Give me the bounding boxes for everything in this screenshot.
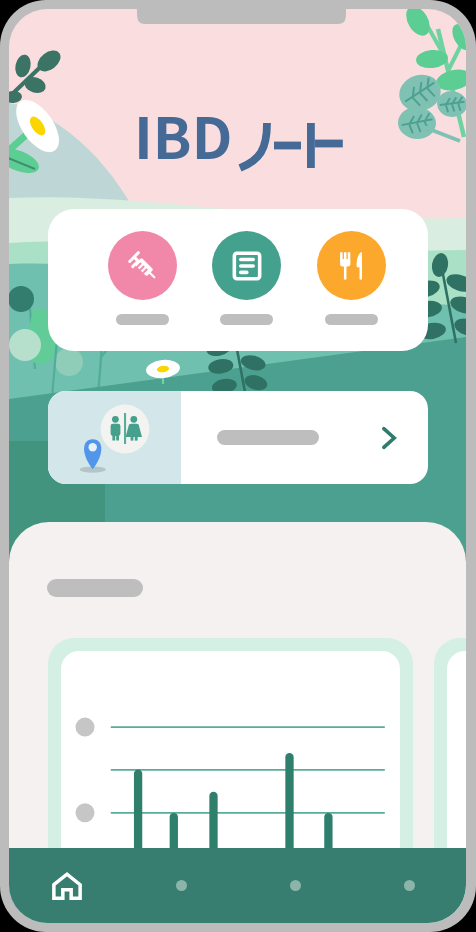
button[interactable]: Weekly chart — [61, 651, 400, 915]
button[interactable] — [48, 391, 428, 484]
staticText: IBD — [134, 93, 233, 176]
button[interactable]: Home — [9, 848, 124, 923]
button[interactable]: Settings — [352, 848, 466, 923]
button[interactable]: Record injection — [102, 225, 183, 331]
button[interactable]: Record note — [206, 225, 287, 331]
button[interactable]: Records — [124, 848, 238, 923]
button[interactable]: Record meal — [311, 225, 392, 331]
button[interactable]: Map — [238, 848, 352, 923]
